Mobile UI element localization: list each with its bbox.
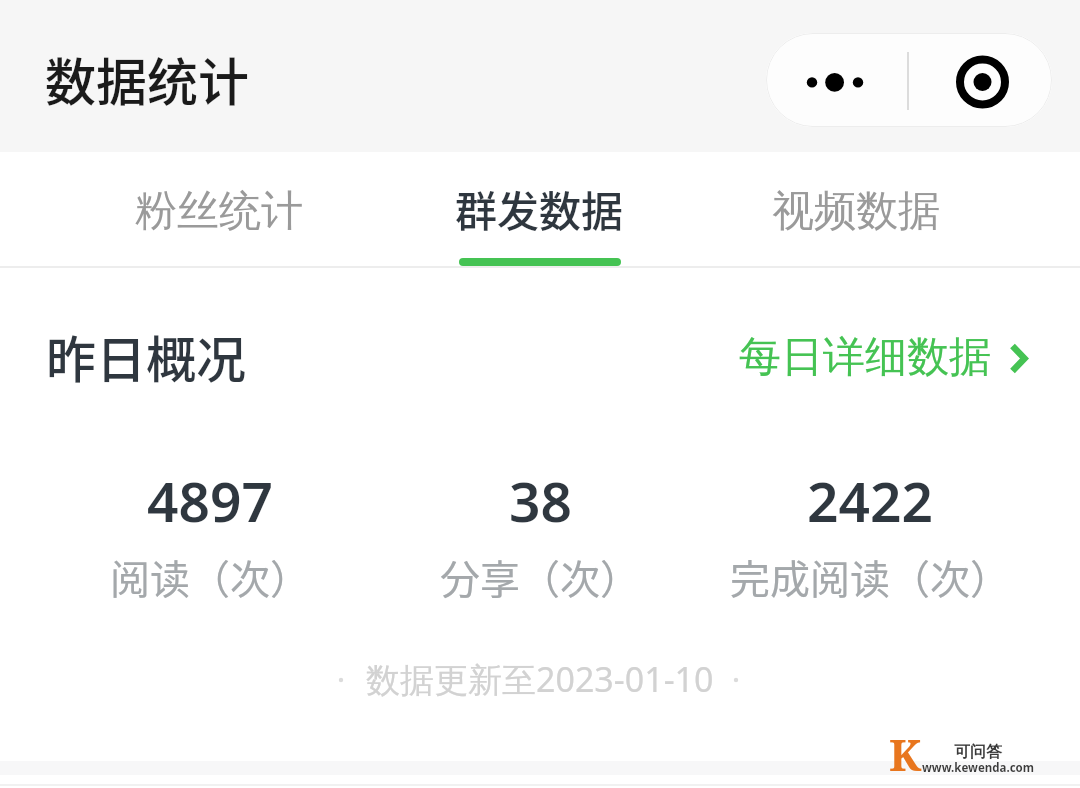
button[interactable]: 粉丝统计: [99, 152, 339, 266]
staticText: 分享（次）: [440, 548, 640, 606]
staticText: www.kewenda.com: [922, 760, 1034, 776]
staticText: 群发数据: [455, 178, 624, 239]
button[interactable]: 每日详细数据: [706, 310, 1056, 394]
staticText: 阅读（次）: [110, 548, 310, 606]
button[interactable]: 4897: [45, 455, 375, 615]
button[interactable]: 群发数据: [419, 152, 659, 266]
staticText: 2422: [807, 463, 933, 538]
staticText: 每日详细数据: [739, 331, 991, 384]
staticText: 数据统计: [45, 42, 250, 116]
button[interactable]: 视频数据: [736, 152, 976, 266]
button[interactable]: More options: [766, 33, 909, 127]
staticText: 粉丝统计: [135, 185, 303, 238]
staticText: 昨日概况: [46, 320, 246, 392]
button[interactable]: 38: [375, 455, 705, 615]
staticText: 可问答: [954, 742, 1002, 762]
staticText: K: [889, 724, 922, 784]
staticText: 完成阅读（次）: [730, 548, 1010, 606]
button[interactable]: Close mini program: [909, 33, 1052, 127]
staticText: 视频数据: [772, 185, 940, 238]
staticText: 4897: [147, 463, 273, 538]
staticText: 38: [509, 463, 572, 538]
button[interactable]: 2422: [705, 455, 1035, 615]
staticText: 数据更新至2023-01-10: [366, 656, 714, 702]
